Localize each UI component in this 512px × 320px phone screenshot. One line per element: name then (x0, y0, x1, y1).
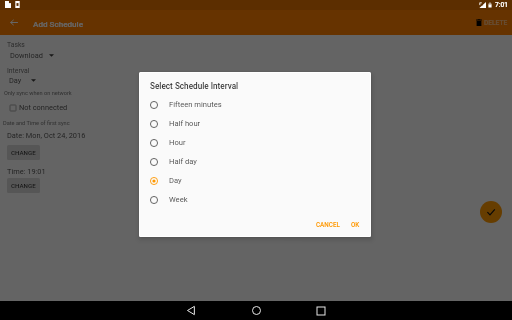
staticText: Date and Time of first sync (3, 120, 70, 127)
button[interactable]: Navigate up (3, 12, 24, 33)
staticText: Select Schedule Interval (150, 81, 239, 91)
staticText: Tasks (7, 41, 25, 49)
button[interactable]: Save schedule (480, 201, 502, 223)
button[interactable]: Not connected (10, 103, 68, 112)
staticText: 7:01 (495, 1, 508, 9)
button[interactable]: CHANGE (7, 145, 40, 160)
staticText: Download (10, 51, 43, 60)
button[interactable]: Download (10, 51, 54, 60)
staticText: Date: Mon, Oct 24, 2016 (7, 131, 86, 140)
button[interactable]: DELETE (471, 10, 512, 35)
button[interactable]: Day (9, 76, 36, 85)
button[interactable]: Half day (139, 152, 371, 171)
staticText: OK (351, 221, 360, 228)
staticText: Day (9, 76, 22, 85)
button[interactable]: Week (139, 190, 371, 209)
staticText: CHANGE (11, 182, 36, 189)
staticText: Only sync when on network (4, 90, 72, 97)
button[interactable]: Hour (139, 133, 371, 152)
button[interactable]: Back (180, 301, 202, 320)
staticText: CANCEL (316, 221, 340, 228)
staticText: Week (169, 195, 188, 204)
button[interactable]: Recent apps (310, 301, 332, 320)
button[interactable]: CANCEL (316, 221, 340, 228)
staticText: Half hour (169, 119, 201, 128)
staticText: Time: 19:01 (7, 167, 46, 176)
button[interactable]: OK (351, 221, 360, 228)
button[interactable]: Day (139, 171, 371, 190)
button[interactable]: Home (245, 301, 267, 320)
button[interactable]: Half hour (139, 114, 371, 133)
staticText: Day (169, 176, 182, 185)
button[interactable]: Fifteen minutes (139, 95, 371, 114)
staticText: Hour (169, 138, 186, 147)
staticText: Half day (169, 157, 197, 166)
staticText: Fifteen minutes (169, 100, 222, 109)
staticText: DELETE (484, 19, 508, 27)
staticText: Not connected (19, 103, 68, 112)
staticText: Interval (7, 67, 30, 75)
staticText: Add Schedule (33, 19, 83, 28)
staticText: CHANGE (11, 149, 36, 156)
button[interactable]: CHANGE (7, 178, 40, 193)
